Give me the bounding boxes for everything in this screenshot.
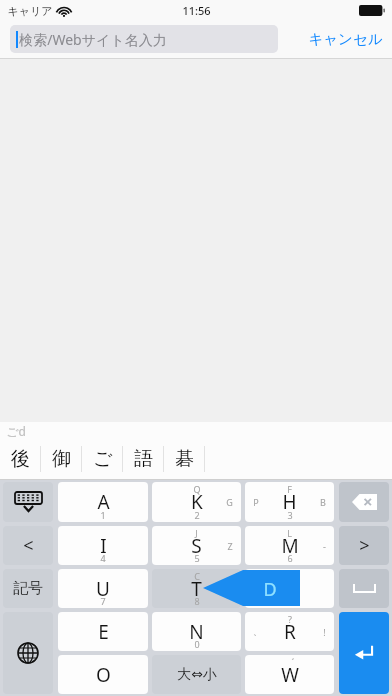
staticText: 0 [194,638,200,650]
button[interactable]: カーソルを右へ [339,526,389,565]
staticText: 4 [100,552,106,564]
button[interactable]: M [245,526,334,565]
staticText: E [98,619,109,645]
staticText: 御 [52,447,71,471]
staticText: 後 [11,447,30,471]
button[interactable]: H [245,482,334,522]
staticText: ご [93,447,113,471]
button[interactable]: カーソルを左へ [3,526,53,565]
staticText: 6 [287,552,293,564]
button[interactable]: 入力モード切替 [3,612,53,694]
button[interactable]: スペース [339,569,389,608]
staticText: T [191,576,202,602]
button[interactable]: E [58,612,148,651]
staticText: 、 [253,626,262,637]
button[interactable]: キャンセル [308,30,383,48]
staticText: > [359,533,370,558]
staticText: 8 [194,595,200,607]
staticText: N [189,619,204,645]
button[interactable]: 語 [123,439,164,479]
staticText: P [253,496,259,508]
staticText: 1 [100,509,106,521]
staticText: 記号 [13,579,43,598]
staticText: B [320,496,326,508]
button[interactable]: T [152,569,241,608]
staticText: M [281,533,299,559]
staticText: H [282,489,297,515]
button[interactable]: 後 [0,439,41,479]
staticText: I [100,533,107,559]
staticText: 語 [134,447,153,471]
staticText: 3 [287,509,293,521]
staticText: 7 [100,595,106,607]
button[interactable]: 御 [41,439,82,479]
button[interactable]: N [152,612,241,651]
staticText: D [263,577,277,602]
staticText: ゛ [285,656,295,667]
button[interactable]: R [245,612,334,651]
staticText: K [191,489,203,515]
staticText: U [96,576,110,602]
staticText: 大⇔小 [177,666,217,684]
staticText: Z [227,540,233,552]
staticText: ごd [6,423,26,439]
button[interactable]: ご [82,439,123,479]
button[interactable]: 大⇔小 [152,655,241,694]
staticText: A [97,489,110,515]
button[interactable]: U [58,569,148,608]
staticText: キャンセル [308,30,383,48]
staticText: R [284,619,296,645]
button[interactable]: K [152,482,241,522]
staticText: - [323,540,326,552]
button[interactable]: 碁 [164,439,205,479]
staticText: S [191,533,202,559]
staticText: 2 [194,509,200,521]
button[interactable]: W [245,655,334,694]
staticText: < [23,533,34,558]
staticText: 11:56 [182,3,211,18]
staticText: 検索/Webサイト名入力 [19,30,167,49]
staticText: 5 [194,552,200,564]
button[interactable]: I [58,526,148,565]
staticText: G [226,496,233,508]
staticText: O [96,662,111,688]
button[interactable] [245,569,334,608]
staticText: C [194,570,200,582]
button[interactable]: 削除 [339,482,389,522]
staticText: キャリア [7,4,53,18]
button[interactable]: 記号 [3,569,53,608]
button[interactable]: S [152,526,241,565]
button[interactable]: 検索/Webサイト名入力 [10,25,278,53]
button[interactable]: 改行 [339,612,389,694]
staticText: Q [193,483,201,495]
staticText: ? [288,613,292,625]
staticText: 碁 [175,447,194,471]
staticText: F [287,483,292,495]
button[interactable]: A [58,482,148,522]
button[interactable]: O [58,655,148,694]
staticText: ! [323,626,326,638]
staticText: W [281,662,299,688]
button[interactable]: キーボードを閉じる [3,482,53,522]
staticText: L [287,527,292,539]
staticText: J [195,527,198,539]
